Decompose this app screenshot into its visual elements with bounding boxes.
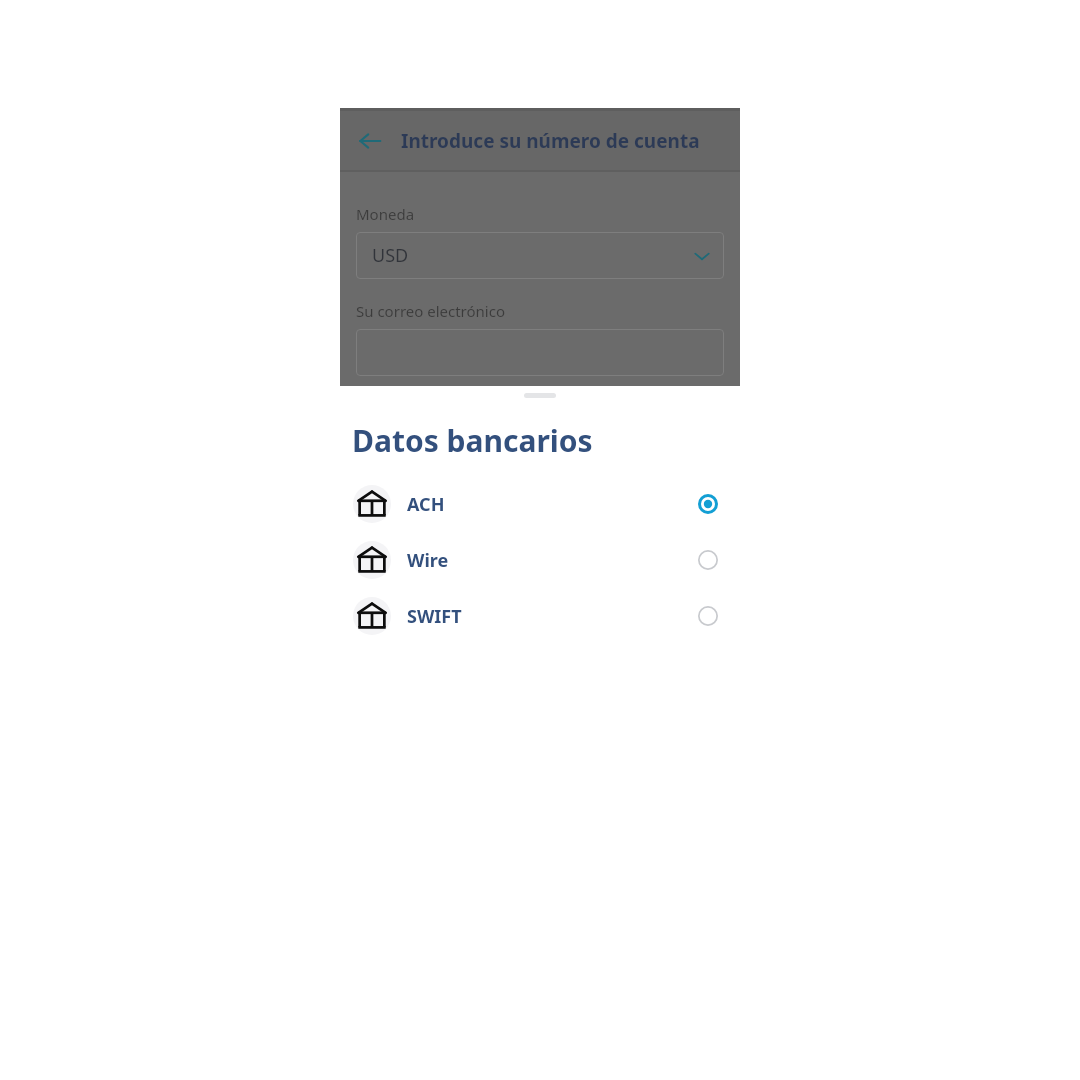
button[interactable]: Wire [340,534,740,586]
staticText: Wire [407,548,449,573]
button[interactable] [356,329,724,376]
staticText: Moneda [356,204,415,224]
staticText: USD [372,243,409,268]
button[interactable]: ACH [340,478,740,530]
staticText: Introduce su número de cuenta [401,128,700,154]
staticText: SWIFT [407,604,462,629]
button[interactable]: USD [356,232,724,279]
staticText: Datos bancarios [352,420,593,461]
staticText: Su correo electrónico [356,301,505,321]
staticText: ACH [407,492,445,517]
button[interactable]: SWIFT [340,590,740,642]
button[interactable]: Back [350,121,390,161]
